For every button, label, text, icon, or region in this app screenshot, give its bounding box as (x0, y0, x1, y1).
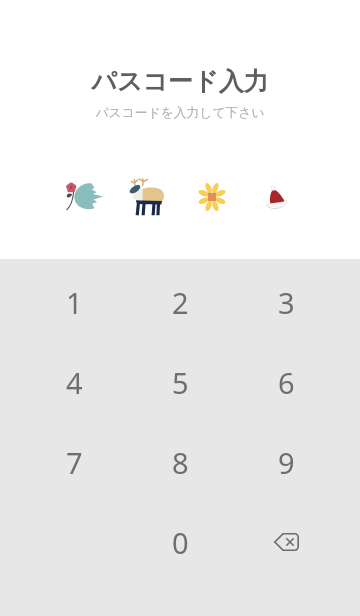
button[interactable]: Delete (233, 502, 339, 582)
button[interactable]: 5 (127, 342, 233, 422)
staticText: 3 (278, 283, 295, 322)
button[interactable]: 7 (21, 422, 127, 502)
button[interactable]: 8 (127, 422, 233, 502)
staticText: 8 (172, 443, 189, 482)
button[interactable]: Flower (180, 173, 244, 221)
staticText: パスコードを入力して下さい (95, 105, 265, 121)
button[interactable]: 6 (233, 342, 339, 422)
staticText: 5 (172, 363, 189, 402)
staticText: 7 (66, 443, 83, 482)
button[interactable]: 4 (21, 342, 127, 422)
button[interactable]: 9 (233, 422, 339, 502)
staticText: パスコード入力 (91, 66, 269, 97)
button[interactable]: 1 (21, 262, 127, 342)
button[interactable]: 3 (233, 262, 339, 342)
button[interactable]: 2 (127, 262, 233, 342)
staticText: 6 (278, 363, 295, 402)
button[interactable]: 0 (127, 502, 233, 582)
staticText: 1 (66, 283, 83, 322)
staticText: 0 (172, 523, 189, 562)
staticText: 9 (278, 443, 295, 482)
staticText: 2 (172, 283, 189, 322)
staticText: 4 (66, 363, 83, 402)
button[interactable]: Reindeer (116, 173, 180, 221)
button[interactable]: Santa hat (244, 173, 308, 221)
other: Delete (262, 518, 310, 566)
button[interactable]: Bird with flower (52, 173, 116, 221)
